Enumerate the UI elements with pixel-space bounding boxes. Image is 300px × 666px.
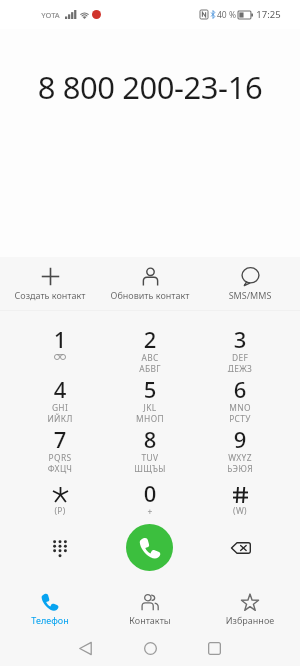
button[interactable]: Создать контакт xyxy=(0,262,100,309)
button[interactable]: 8 xyxy=(105,424,195,478)
button[interactable]: 6 xyxy=(195,374,285,424)
staticText: ДЕЖЗ xyxy=(195,363,285,372)
staticText: ABC xyxy=(105,352,195,363)
button[interactable]: Обновить контакт xyxy=(100,262,200,309)
button[interactable]: 1 xyxy=(15,324,105,374)
button[interactable]: (P) xyxy=(15,478,105,528)
button[interactable]: Dialpad xyxy=(38,526,82,570)
staticText: Избранное xyxy=(200,614,300,626)
button[interactable]: Избранное xyxy=(200,590,300,632)
staticText: 7 xyxy=(15,424,105,454)
staticText: SMS/MMS xyxy=(200,289,300,301)
staticText: ФХЦЧ xyxy=(15,463,105,474)
button[interactable]: SMS/MMS xyxy=(200,262,300,309)
staticText: ЬЭЮЯ xyxy=(195,463,285,474)
staticText: 3 xyxy=(195,324,285,354)
staticText: 9 xyxy=(195,424,285,454)
staticText: + xyxy=(105,506,195,517)
button[interactable]: Recents xyxy=(196,630,232,666)
staticText: 17:25 xyxy=(256,8,281,21)
button[interactable]: Телефон xyxy=(0,590,100,632)
button[interactable]: Delete xyxy=(219,526,263,570)
staticText: 2 xyxy=(105,324,195,354)
staticText: 5 xyxy=(105,374,195,404)
button[interactable]: 9 xyxy=(195,424,285,478)
staticText: GHI xyxy=(15,402,105,413)
button[interactable]: Контакты xyxy=(100,590,200,632)
staticText: DEF xyxy=(195,352,285,363)
staticText: ИЙКЛ xyxy=(15,413,105,422)
staticText: YOTA xyxy=(41,10,60,20)
button[interactable]: Call xyxy=(126,524,173,571)
staticText: 4 xyxy=(15,374,105,404)
staticText: 8 800 200-23-16 xyxy=(0,66,300,108)
button[interactable]: Back xyxy=(67,630,103,666)
button[interactable]: 3 xyxy=(195,324,285,374)
staticText: PQRS xyxy=(15,452,105,463)
staticText: (W) xyxy=(195,505,285,516)
staticText: TUV xyxy=(105,452,195,463)
staticText: WXYZ xyxy=(195,452,285,463)
staticText: РСТУ xyxy=(195,413,285,422)
staticText: (P) xyxy=(15,505,105,516)
button[interactable]: 2 xyxy=(105,324,195,374)
staticText: Контакты xyxy=(100,614,200,626)
staticText: АБВГ xyxy=(105,363,195,372)
button[interactable]: Home xyxy=(132,630,168,666)
staticText: Телефон xyxy=(0,614,100,626)
staticText: ШЩЪЫ xyxy=(105,463,195,474)
staticText: MNO xyxy=(195,402,285,413)
button[interactable]: 0 xyxy=(105,478,195,528)
button[interactable]: 7 xyxy=(15,424,105,478)
staticText: 8 xyxy=(105,424,195,454)
staticText: 40 % xyxy=(217,9,236,21)
staticText: 6 xyxy=(195,374,285,404)
button[interactable]: 5 xyxy=(105,374,195,424)
button[interactable]: (W) xyxy=(195,478,285,528)
staticText: Создать контакт xyxy=(0,289,100,301)
staticText: 0 xyxy=(105,478,195,508)
staticText: JKL xyxy=(105,402,195,413)
staticText: Обновить контакт xyxy=(100,289,200,301)
button[interactable]: 4 xyxy=(15,374,105,424)
staticText: 1 xyxy=(15,324,105,354)
staticText: МНОП xyxy=(105,413,195,422)
